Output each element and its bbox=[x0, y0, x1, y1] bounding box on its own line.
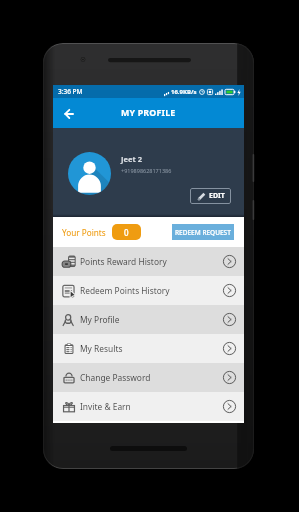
button[interactable]: My Results bbox=[53, 334, 244, 363]
staticText: Jeet 2 bbox=[121, 154, 142, 164]
staticText: REDEEM REQUEST bbox=[175, 228, 231, 237]
staticText: EDIT bbox=[209, 191, 225, 201]
button[interactable]: Change Password bbox=[53, 363, 244, 392]
button[interactable]: Invite & Earn bbox=[53, 392, 244, 421]
staticText: 0 bbox=[124, 227, 129, 238]
staticText: Your Points bbox=[62, 227, 106, 238]
staticText: My Profile bbox=[80, 314, 120, 325]
staticText: Invite & Earn bbox=[80, 401, 131, 412]
button[interactable]: REDEEM REQUEST bbox=[172, 224, 234, 240]
staticText: 16.9KB/s bbox=[171, 88, 197, 96]
staticText: MY PROFILE bbox=[121, 107, 176, 119]
button[interactable]: My Profile bbox=[53, 305, 244, 334]
staticText: Points Reward History bbox=[80, 256, 167, 267]
staticText: Redeem Points History bbox=[80, 285, 170, 296]
button[interactable]: Back bbox=[61, 105, 78, 122]
staticText: 3:36 PM bbox=[58, 87, 83, 96]
staticText: +919898628171386 bbox=[121, 167, 172, 174]
staticText: Change Password bbox=[80, 372, 151, 383]
staticText: My Results bbox=[80, 343, 123, 354]
button[interactable]: EDIT bbox=[190, 188, 231, 204]
button[interactable]: Redeem Points History bbox=[53, 276, 244, 305]
button[interactable]: Points Reward History bbox=[53, 247, 244, 276]
